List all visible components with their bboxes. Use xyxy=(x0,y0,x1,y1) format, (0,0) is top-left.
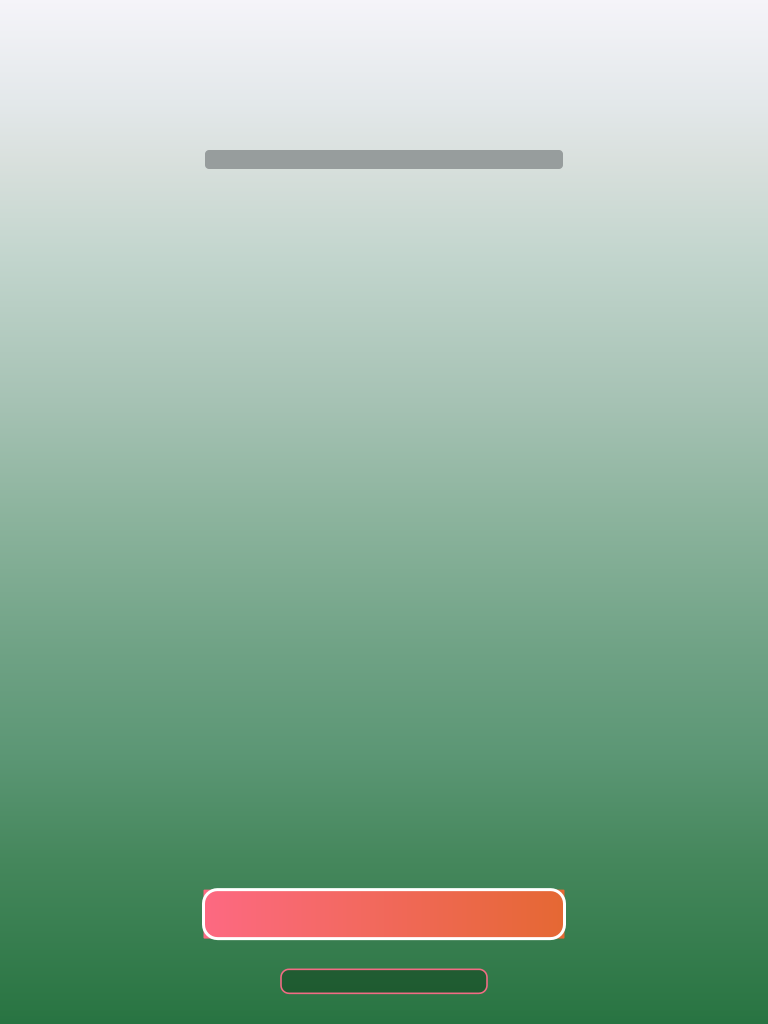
button[interactable]: Continue xyxy=(203,890,564,939)
button[interactable]: Secondary action xyxy=(281,969,487,993)
